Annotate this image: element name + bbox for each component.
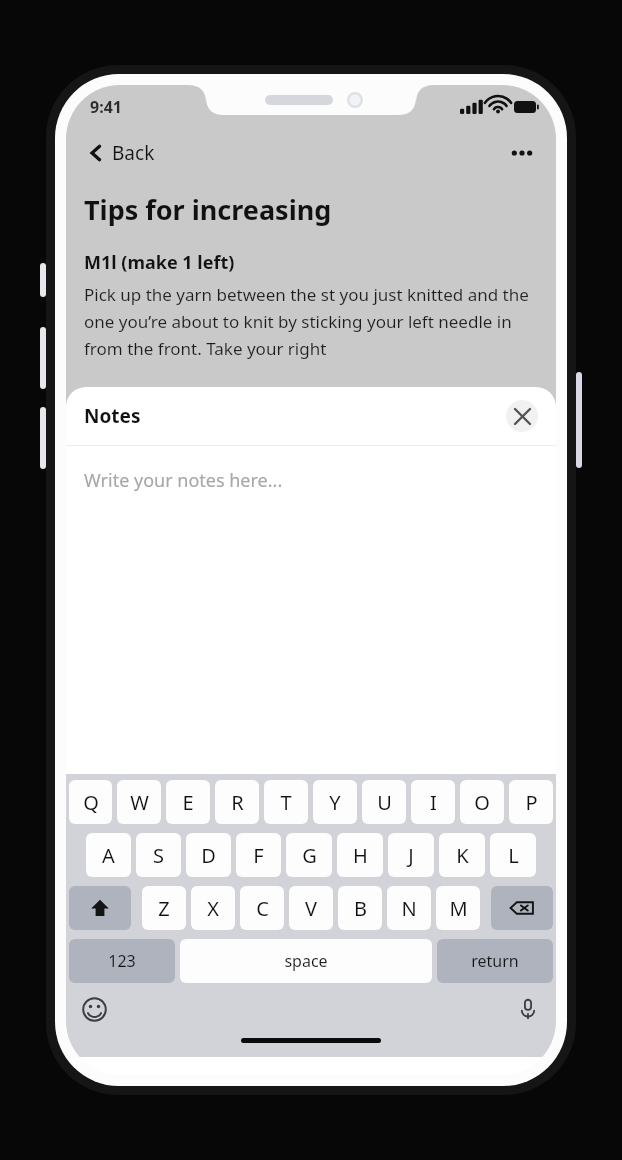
button[interactable]: Backspace xyxy=(491,886,553,930)
button[interactable]: C xyxy=(240,886,284,930)
button[interactable]: Emoji xyxy=(79,994,109,1024)
button[interactable]: M xyxy=(436,886,480,930)
button[interactable]: J xyxy=(388,833,434,877)
staticText: space xyxy=(284,950,328,972)
button[interactable]: L xyxy=(490,833,536,877)
staticText: M xyxy=(449,895,468,922)
staticText: K xyxy=(456,842,469,869)
staticText: U xyxy=(377,789,392,816)
staticText: Back xyxy=(112,140,155,166)
staticText: Notes xyxy=(84,403,141,429)
staticText: S xyxy=(153,842,164,869)
staticText: R xyxy=(231,789,244,816)
staticText: C xyxy=(256,895,269,922)
button[interactable]: K xyxy=(439,833,485,877)
staticText: P xyxy=(525,789,538,816)
staticText: D xyxy=(201,842,216,869)
button[interactable]: Close notes xyxy=(506,400,538,432)
staticText: M1l (make 1 left) xyxy=(84,250,235,275)
staticText: T xyxy=(280,789,292,816)
button[interactable]: I xyxy=(411,780,455,824)
button[interactable]: Shift xyxy=(69,886,131,930)
staticText: B xyxy=(354,895,367,922)
button[interactable]: More options xyxy=(504,135,540,171)
button[interactable]: D xyxy=(186,833,231,877)
button[interactable]: space xyxy=(180,939,432,983)
button[interactable]: F xyxy=(236,833,281,877)
staticText: J xyxy=(408,842,414,869)
staticText: Tips for increasing xyxy=(84,191,332,228)
staticText: L xyxy=(508,842,519,869)
staticText: Y xyxy=(329,789,341,816)
button[interactable]: Write your notes here... xyxy=(66,446,556,774)
staticText: I xyxy=(430,789,437,816)
button[interactable]: V xyxy=(289,886,333,930)
staticText: V xyxy=(305,895,317,922)
button[interactable]: W xyxy=(117,780,161,824)
staticText: X xyxy=(207,895,219,922)
staticText: 9:41 xyxy=(90,96,122,118)
button[interactable]: U xyxy=(362,780,406,824)
button[interactable]: Q xyxy=(69,780,112,824)
staticText: H xyxy=(353,842,368,869)
button[interactable]: Dictate xyxy=(513,994,543,1024)
button[interactable]: X xyxy=(191,886,235,930)
button[interactable]: O xyxy=(460,780,504,824)
staticText: return xyxy=(471,950,519,972)
button[interactable]: G xyxy=(286,833,332,877)
button[interactable]: P xyxy=(509,780,553,824)
button[interactable]: R xyxy=(215,780,259,824)
button[interactable]: 123 xyxy=(69,939,175,983)
staticText: Q xyxy=(83,789,99,816)
button[interactable]: Z xyxy=(142,886,186,930)
button[interactable]: T xyxy=(264,780,308,824)
staticText: O xyxy=(474,789,490,816)
staticText: N xyxy=(401,895,417,922)
button[interactable]: return xyxy=(437,939,553,983)
staticText: G xyxy=(302,842,317,869)
button[interactable]: B xyxy=(338,886,382,930)
button[interactable]: H xyxy=(337,833,383,877)
staticText: Write your notes here... xyxy=(84,468,283,493)
button[interactable]: S xyxy=(136,833,181,877)
staticText: Z xyxy=(158,895,170,922)
button[interactable]: Back xyxy=(82,136,159,170)
staticText: F xyxy=(253,842,264,869)
button[interactable]: E xyxy=(166,780,210,824)
staticText: W xyxy=(130,789,149,816)
button[interactable]: A xyxy=(86,833,131,877)
staticText: Pick up the yarn between the st you just… xyxy=(84,283,538,360)
button[interactable]: Y xyxy=(313,780,357,824)
button[interactable]: N xyxy=(387,886,431,930)
staticText: 123 xyxy=(108,950,136,972)
staticText: A xyxy=(102,842,115,869)
staticText: E xyxy=(182,789,194,816)
